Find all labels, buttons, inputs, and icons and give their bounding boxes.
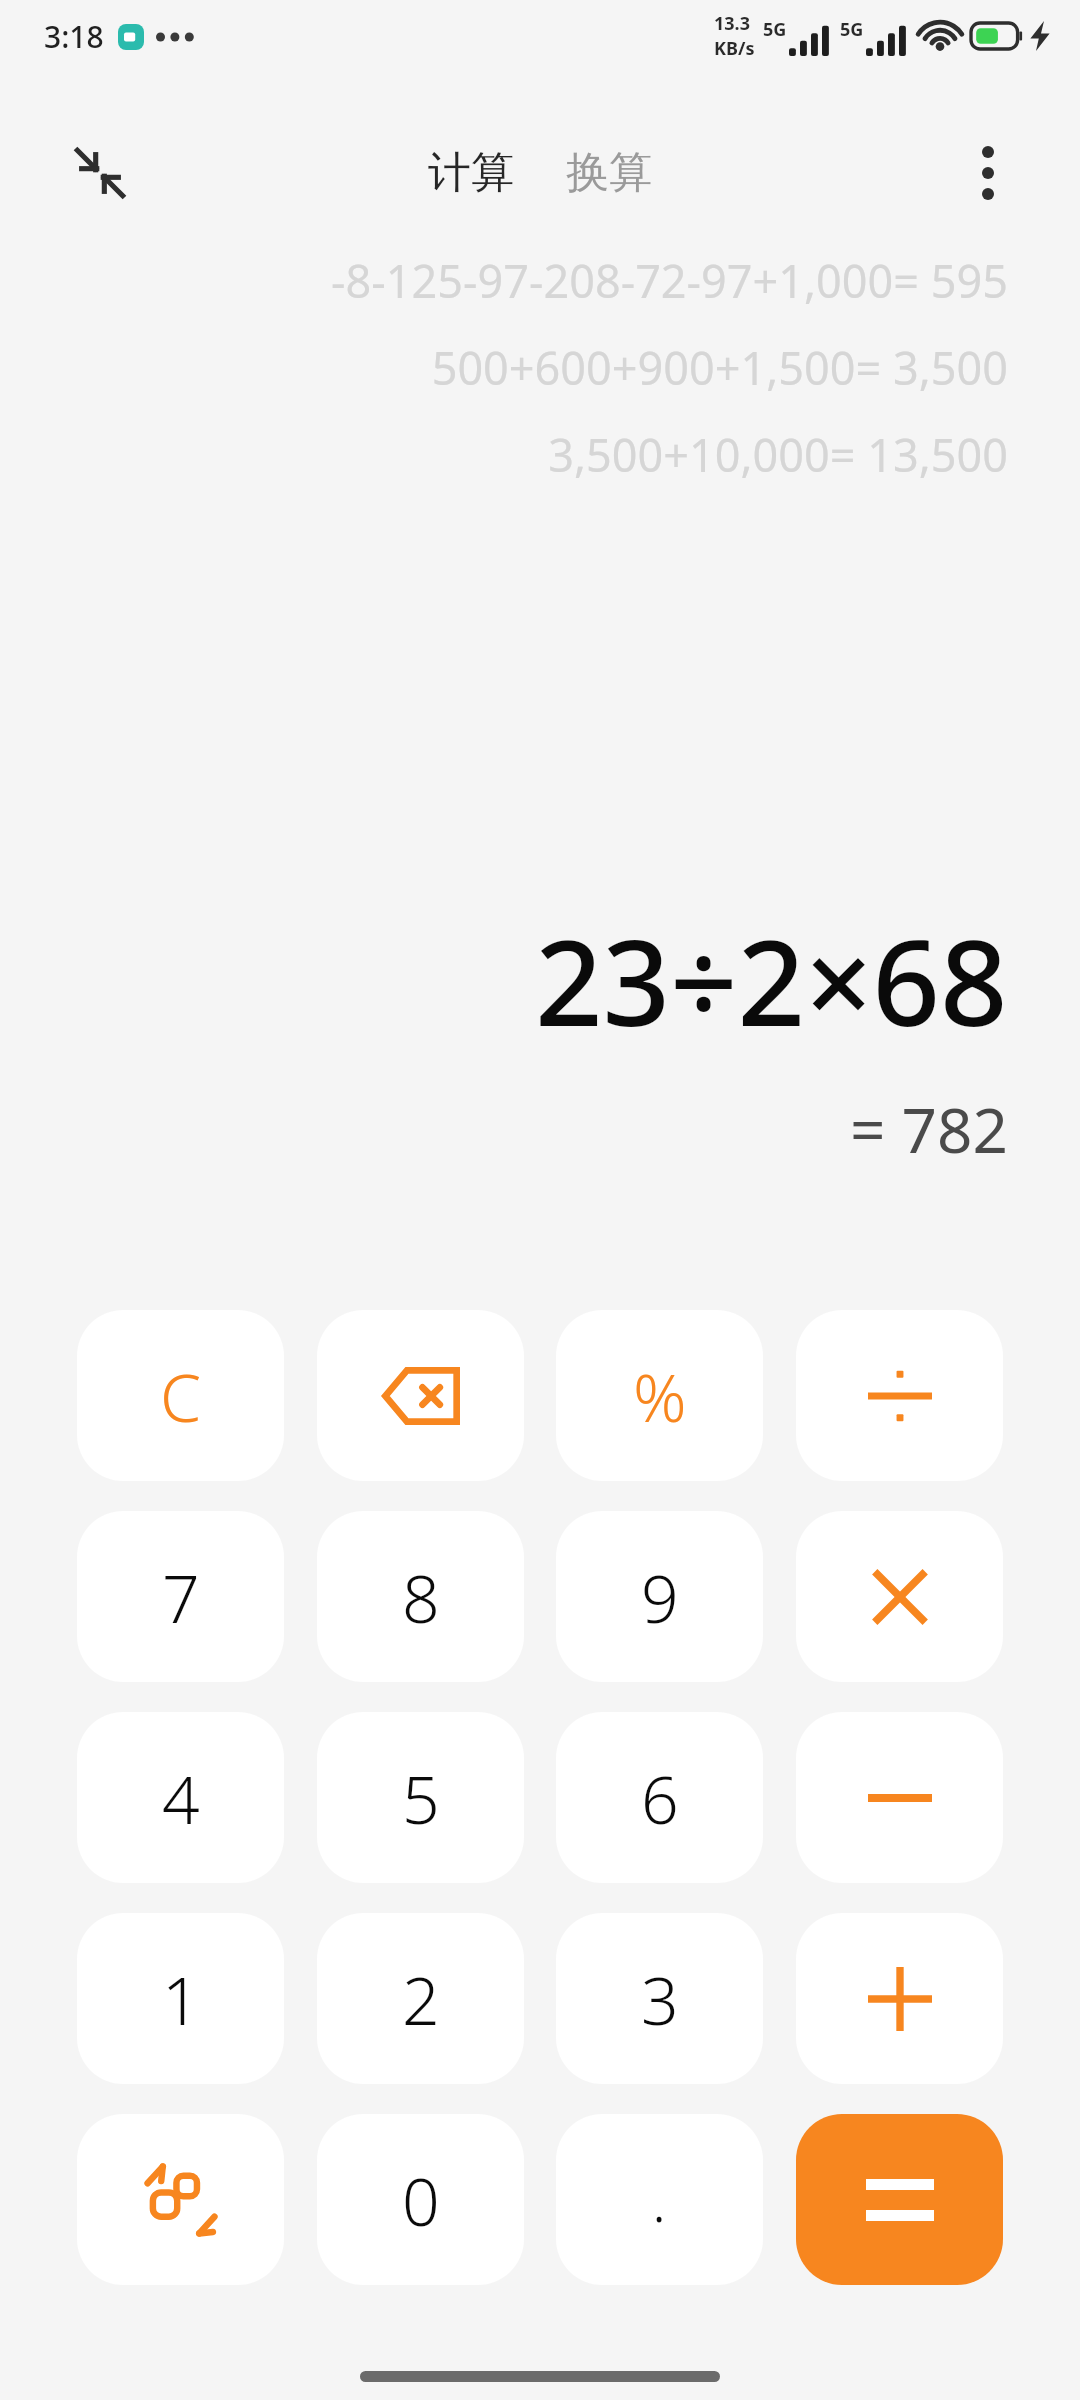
staticText: 2 [402,1954,440,2044]
button[interactable]: 6 [556,1712,763,1883]
staticText: 6 [641,1753,679,1843]
staticText: 5 [402,1753,440,1843]
staticText: 换算 [566,146,652,200]
button[interactable]: Backspace [317,1310,524,1481]
button[interactable]: 9 [556,1511,763,1682]
staticText: 500+600+900+1,500= 3,500 [431,337,1008,398]
staticText: 23÷2×68 [535,900,1008,1061]
button[interactable]: 2 [317,1913,524,2084]
staticText: 4 [162,1753,200,1843]
button[interactable]: % [556,1310,763,1481]
staticText: 3:18 [44,16,104,57]
button[interactable]: Collapse [58,131,142,215]
staticText: 5G [763,17,787,42]
staticText: 8 [402,1552,440,1642]
staticText: 3,500+10,000= 13,500 [548,424,1008,485]
staticText: 9 [641,1552,679,1642]
staticText: . [652,2160,667,2239]
button[interactable]: 换算 [556,138,662,208]
button[interactable] [796,1310,1003,1481]
staticText: 7 [162,1552,200,1642]
button[interactable]: . [556,2114,763,2285]
button[interactable]: C [77,1310,284,1481]
staticText: % [633,1351,687,1441]
button[interactable] [796,1712,1003,1883]
button[interactable] [796,2114,1003,2285]
button[interactable]: 3 [556,1913,763,2084]
button[interactable]: 7 [77,1511,284,1682]
staticText: 0 [402,2155,440,2245]
button[interactable] [796,1511,1003,1682]
staticText: -8-125-97-208-72-97+1,000= 595 [331,250,1008,311]
button[interactable]: 5 [317,1712,524,1883]
staticText: 1 [162,1954,200,2044]
button[interactable]: Scientific mode [77,2114,284,2285]
button[interactable]: 1 [77,1913,284,2084]
staticText: C [160,1351,202,1441]
staticText: 13.3 [714,11,750,36]
button[interactable]: 0 [317,2114,524,2285]
staticText: 5G [840,17,864,42]
staticText: = 782 [850,1087,1008,1171]
staticText: 3 [641,1954,679,2044]
button[interactable]: 8 [317,1511,524,1682]
button[interactable]: 计算 [418,138,524,208]
staticText: KB/s [714,36,755,61]
staticText: 计算 [428,146,514,200]
button[interactable]: 4 [77,1712,284,1883]
button[interactable] [796,1913,1003,2084]
button[interactable]: More options [946,131,1030,215]
